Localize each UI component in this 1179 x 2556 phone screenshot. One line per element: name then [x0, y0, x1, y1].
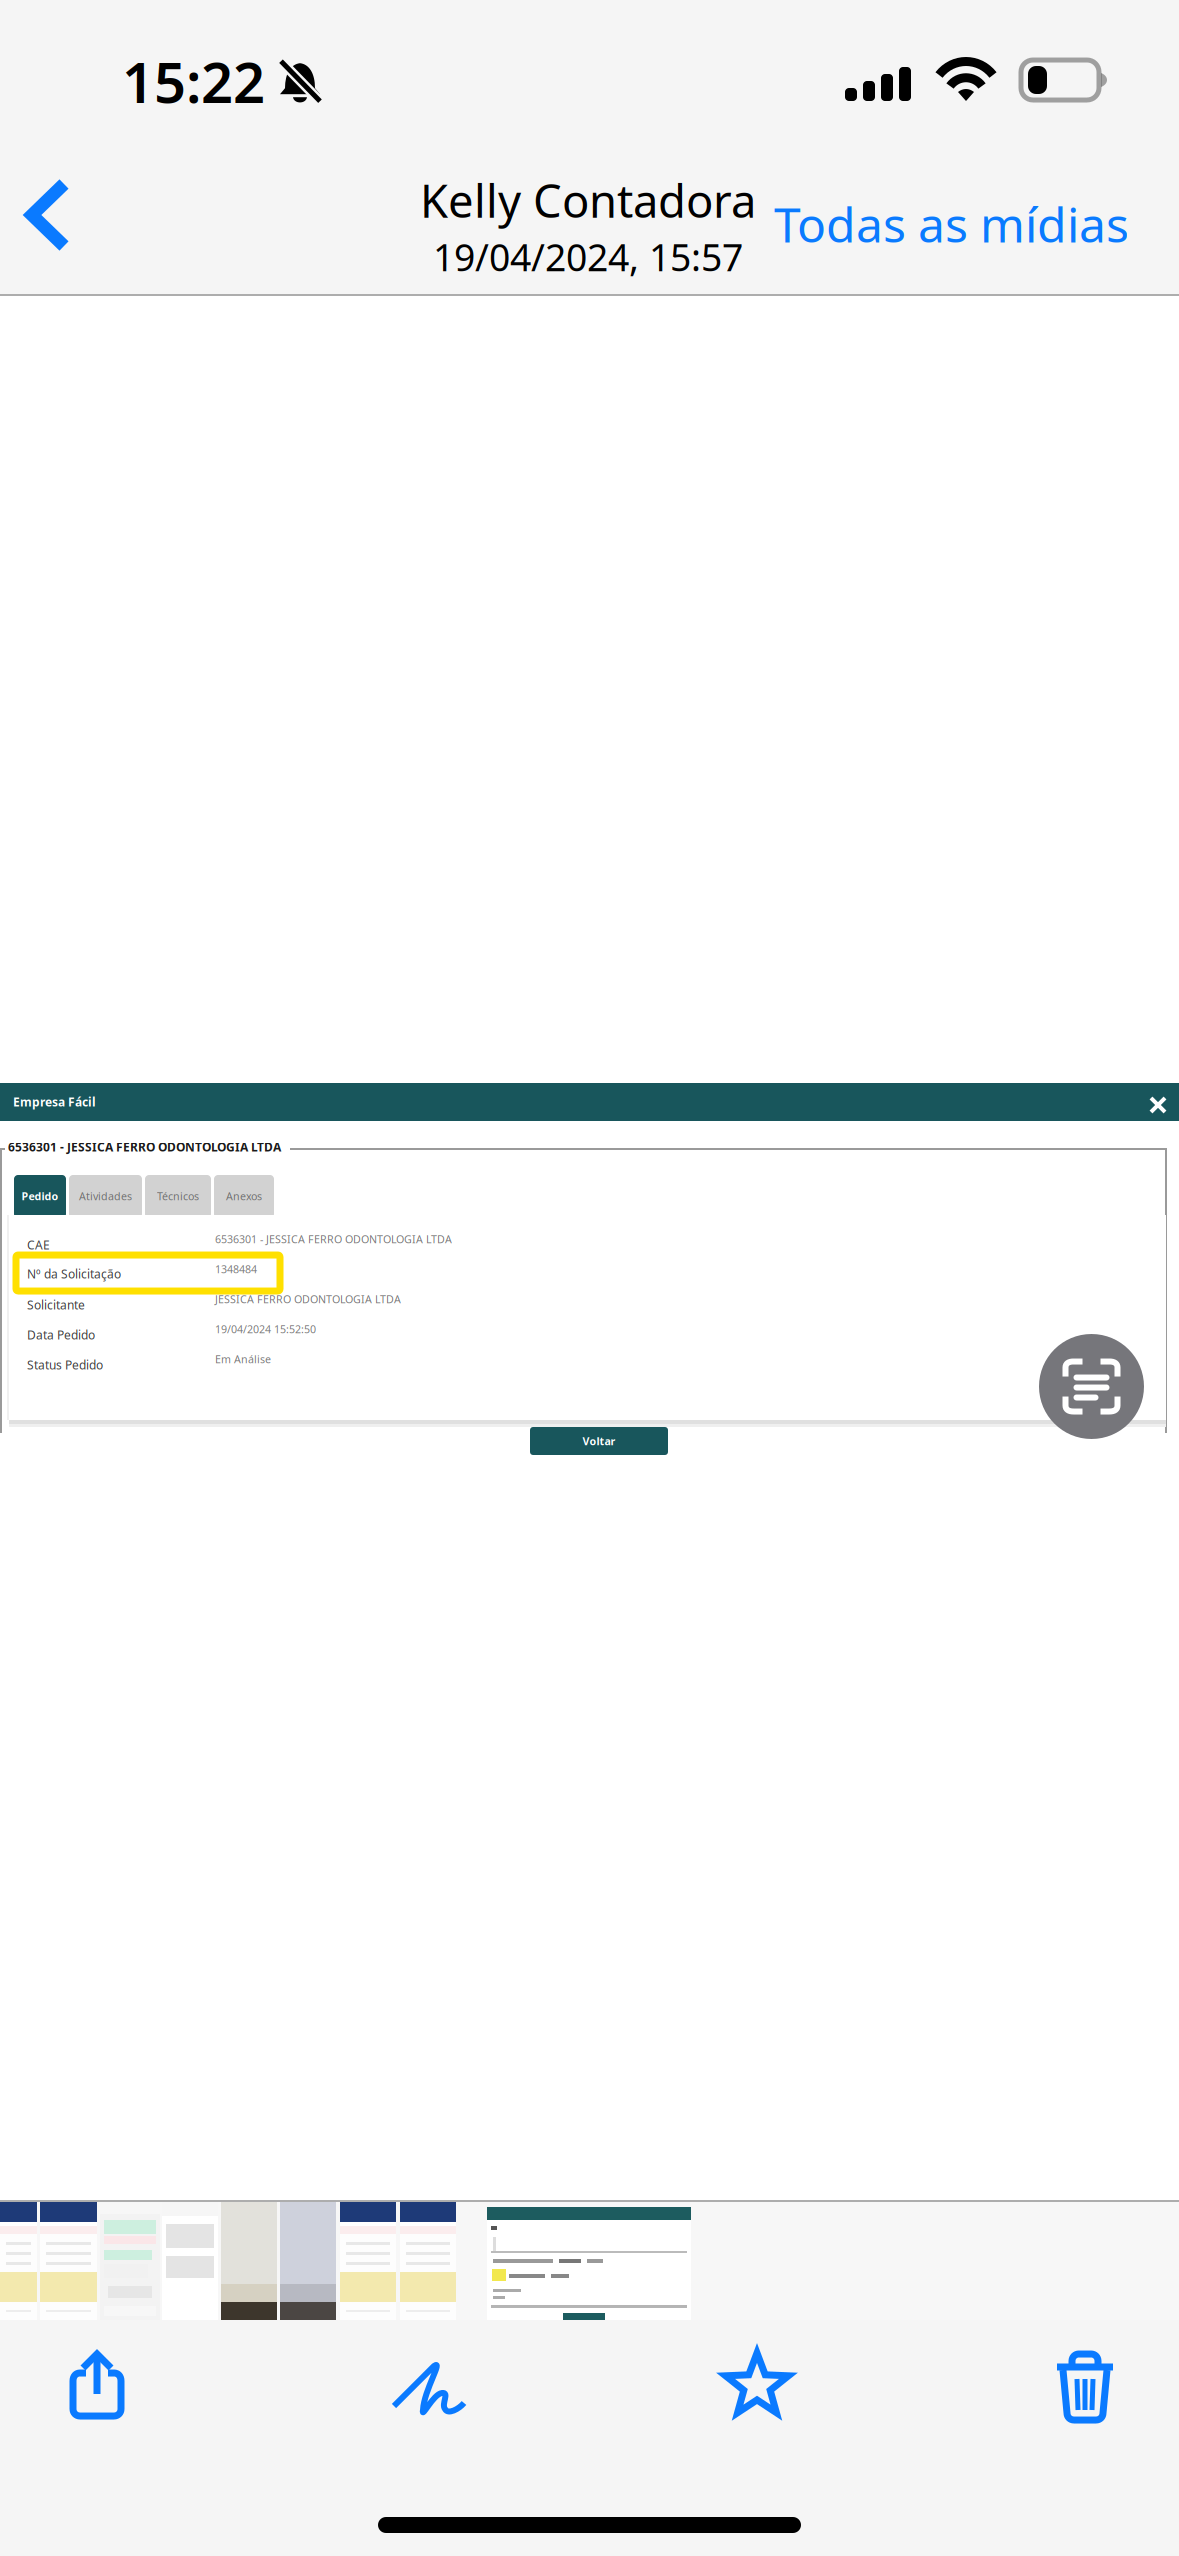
staticText: JESSICA FERRO ODONTOLOGIA LTDA	[215, 1292, 401, 1306]
staticText: Nº da Solicitação	[27, 1266, 121, 1282]
staticText: 19/04/2024, 15:57	[433, 232, 743, 282]
button[interactable]: Share	[29, 2320, 165, 2450]
staticText: Status Pedido	[27, 1357, 103, 1373]
staticText: 6536301 - JESSICA FERRO ODONTOLOGIA LTDA	[215, 1232, 452, 1246]
staticText: Empresa Fácil	[13, 1094, 96, 1110]
staticText: 6536301 - JESSICA FERRO ODONTOLOGIA LTDA	[8, 1139, 281, 1155]
staticText: Em Análise	[215, 1352, 271, 1366]
staticText: Técnicos	[157, 1189, 199, 1203]
staticText: Pedido	[21, 1189, 58, 1203]
staticText: Anexos	[226, 1189, 262, 1203]
staticText: CAE	[27, 1237, 50, 1253]
button[interactable]: Live Text	[1039, 1334, 1144, 1439]
button[interactable]: Todas as mídias	[760, 180, 1174, 268]
staticText: Todas as mídias	[774, 192, 1129, 256]
staticText: Atividades	[79, 1189, 132, 1203]
button[interactable]: Markup	[350, 2320, 510, 2458]
button[interactable]: Back	[0, 158, 112, 270]
staticText: Data Pedido	[27, 1327, 95, 1343]
staticText: 19/04/2024 15:52:50	[215, 1322, 316, 1336]
staticText: Solicitante	[27, 1297, 85, 1313]
staticText: 1348484	[215, 1262, 257, 1276]
button[interactable]: Favourite	[678, 2320, 836, 2456]
staticText: Kelly Contadora	[420, 170, 756, 230]
staticText: 15:22	[122, 44, 265, 118]
staticText: Voltar	[582, 1434, 615, 1448]
button[interactable]: Delete	[1013, 2320, 1157, 2456]
